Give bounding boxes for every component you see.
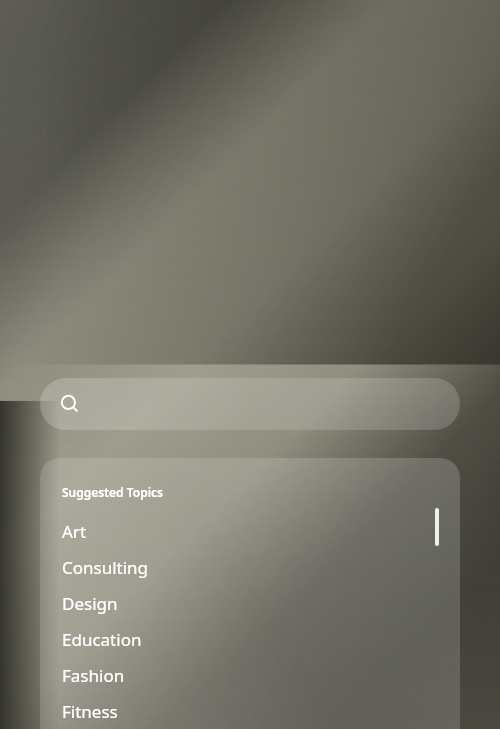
button[interactable]: Fitness [40, 693, 460, 729]
other: Search [60, 394, 80, 414]
button[interactable]: Design [40, 585, 460, 621]
staticText: Design [62, 592, 118, 615]
button[interactable]: Art [40, 513, 460, 549]
staticText: Consulting [62, 556, 149, 579]
staticText: Art [62, 520, 87, 543]
staticText: Fashion [62, 664, 125, 687]
button[interactable]: Education [40, 621, 460, 657]
button[interactable]: Consulting [40, 549, 460, 585]
button[interactable]: Fashion [40, 657, 460, 693]
staticText: Education [62, 628, 142, 651]
button[interactable]: Search [40, 378, 460, 430]
staticText: Fitness [62, 700, 118, 723]
staticText: Suggested Topics [62, 484, 163, 500]
